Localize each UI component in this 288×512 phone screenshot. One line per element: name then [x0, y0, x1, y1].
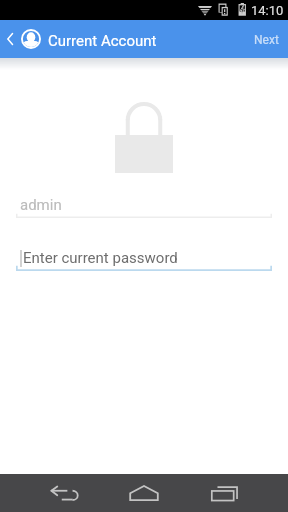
button[interactable]: Recent apps [198, 474, 250, 512]
button[interactable]: Next [240, 20, 288, 58]
button[interactable]: admin [0, 192, 288, 218]
button[interactable]: Home [118, 474, 170, 512]
staticText: Next [254, 33, 279, 47]
staticText: admin [20, 196, 62, 214]
staticText: 14:10 [251, 3, 284, 18]
staticText: Current Account [48, 32, 157, 50]
staticText: Enter current password [23, 249, 178, 267]
button[interactable]: Enter current password [0, 245, 288, 271]
button[interactable]: Back [38, 474, 90, 512]
button[interactable]: Navigate up [0, 20, 20, 58]
